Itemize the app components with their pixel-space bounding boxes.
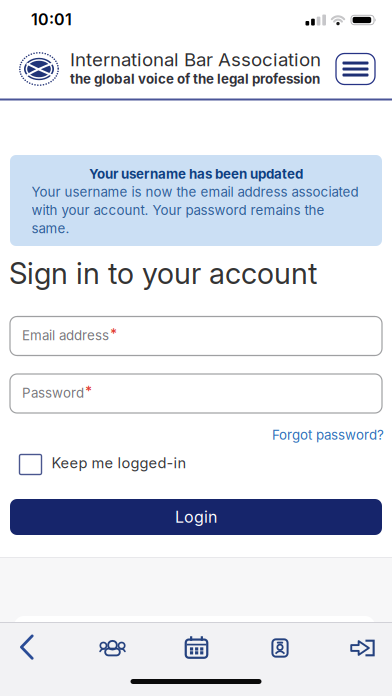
staticText: International Bar Association bbox=[70, 48, 321, 70]
button[interactable]: Keep me logged-in bbox=[19, 454, 186, 474]
button[interactable]: Delegates bbox=[97, 636, 127, 660]
staticText: same. bbox=[31, 220, 69, 236]
button[interactable]: Login bbox=[10, 499, 382, 535]
button[interactable]: My profile bbox=[271, 638, 289, 657]
staticText: Password bbox=[22, 385, 84, 401]
staticText: with your account. Your password remains… bbox=[31, 202, 324, 218]
button[interactable]: Password bbox=[10, 374, 382, 413]
button[interactable]: Sign out bbox=[349, 639, 375, 657]
staticText: * bbox=[110, 325, 117, 341]
staticText: the global voice of the legal profession bbox=[70, 71, 320, 87]
staticText: Sign in to your account bbox=[9, 256, 317, 291]
button[interactable]: Menu bbox=[336, 53, 375, 84]
staticText: Forgot password? bbox=[272, 427, 384, 443]
button[interactable]: International Bar Association bbox=[16, 45, 64, 93]
staticText: Your username is now the email address a… bbox=[31, 184, 358, 200]
button[interactable]: Back bbox=[12, 632, 42, 662]
staticText: Keep me logged-in bbox=[51, 454, 186, 472]
staticText: Login bbox=[175, 508, 217, 526]
staticText: 10:01 bbox=[31, 10, 72, 29]
staticText: Email address bbox=[22, 327, 109, 343]
button[interactable]: Email address bbox=[10, 316, 382, 355]
button[interactable]: Forgot password? bbox=[272, 427, 384, 443]
staticText: Your username has been updated bbox=[89, 166, 303, 182]
staticText: * bbox=[85, 383, 92, 399]
button[interactable]: Programme bbox=[184, 634, 209, 659]
